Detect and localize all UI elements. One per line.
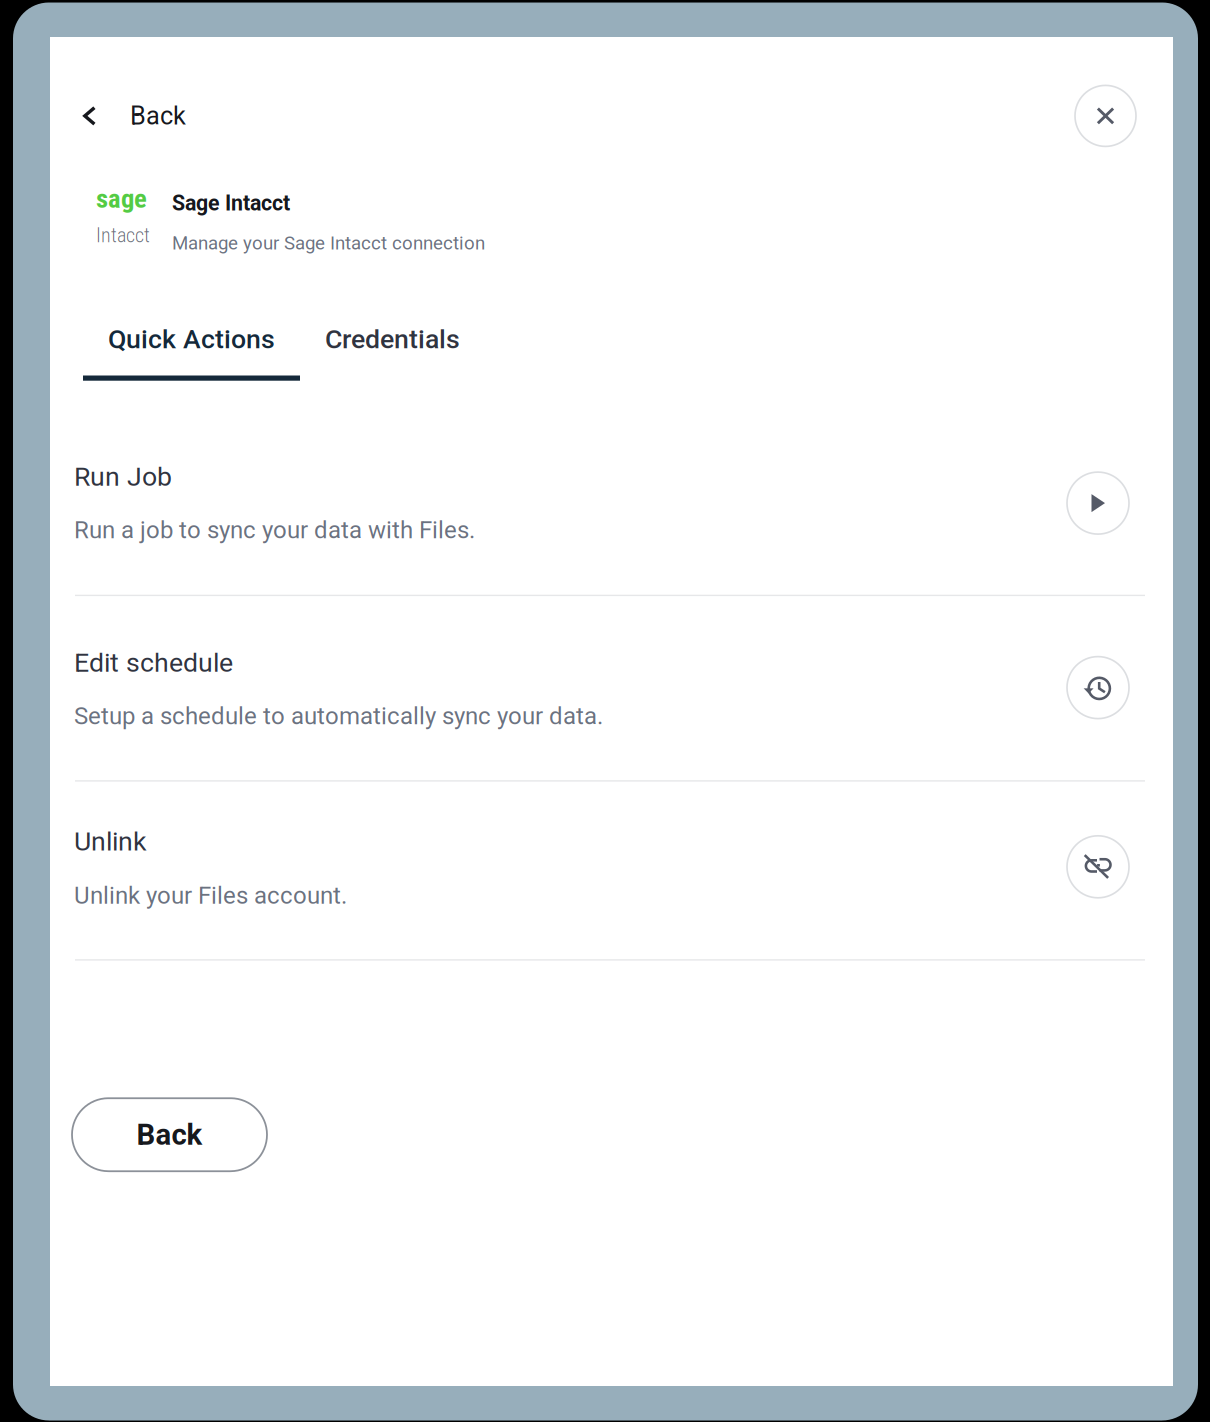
button[interactable]: Credentials [300,324,460,355]
staticText: Back [130,101,186,131]
button[interactable]: Back [72,1098,267,1171]
button[interactable]: Edit schedule [50,596,1173,780]
staticText: Manage your Sage Intacct connection [172,232,485,254]
staticText: Back [136,1117,202,1152]
button[interactable]: Unlink [50,782,1173,959]
staticText: Quick Actions [108,324,275,355]
button[interactable]: Run job [1067,472,1129,534]
button[interactable]: Edit schedule [1067,657,1129,719]
staticText: Unlink your Files account. [74,881,347,910]
button[interactable]: Unlink [1067,836,1129,898]
staticText: Unlink [74,826,147,857]
staticText: Credentials [325,324,460,355]
staticText: Intacct [96,224,150,247]
staticText: Edit schedule [74,647,233,678]
staticText: Run Job [74,461,172,492]
button[interactable]: Back [50,85,196,146]
staticText: Setup a schedule to automatically sync y… [74,702,603,730]
button[interactable]: Quick Actions [83,324,300,355]
button[interactable]: Close [1075,85,1136,146]
staticText: Run a job to sync your data with Files. [74,516,475,544]
staticText: sage [96,183,147,214]
button[interactable]: Run Job [50,461,1173,595]
staticText: Sage Intacct [172,191,290,216]
